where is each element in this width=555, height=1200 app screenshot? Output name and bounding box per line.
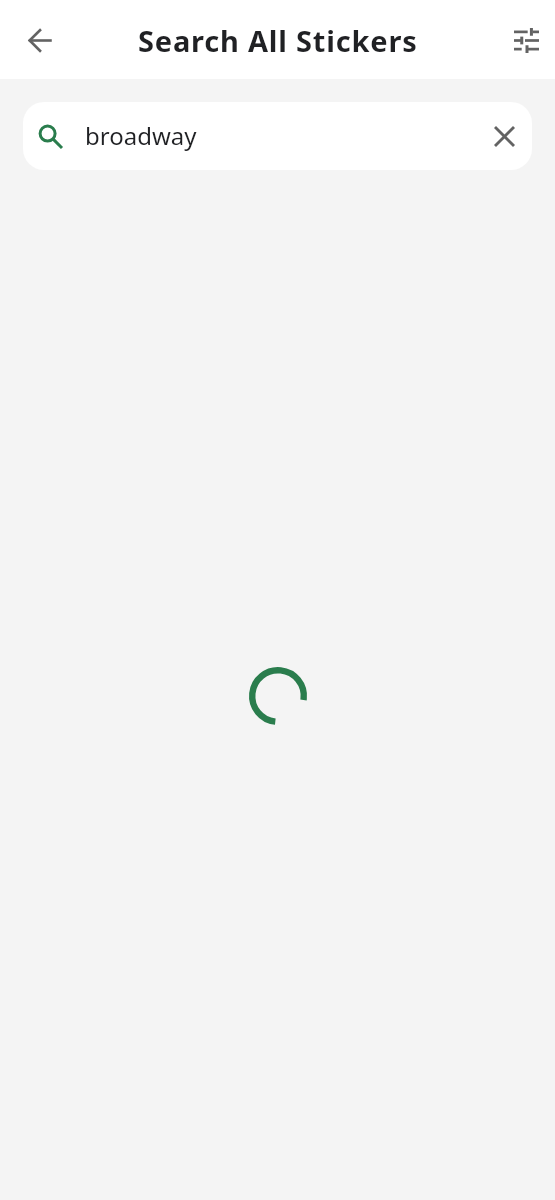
button[interactable]: Back — [13, 13, 67, 67]
staticText: Search All Stickers — [138, 21, 418, 60]
staticText: broadway — [85, 119, 197, 152]
other: Loading — [249, 667, 307, 725]
button[interactable]: broadway — [23, 102, 532, 170]
button[interactable]: Filter — [499, 13, 553, 67]
button[interactable]: Clear search — [479, 111, 529, 161]
